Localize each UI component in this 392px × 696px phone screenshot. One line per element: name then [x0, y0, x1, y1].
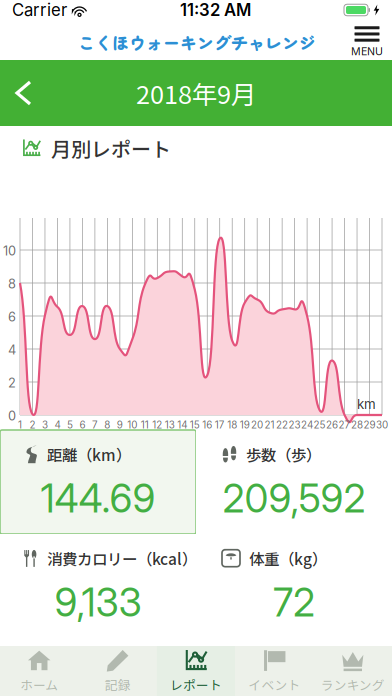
staticText: 26 [326, 419, 338, 431]
staticText: 4 [8, 342, 16, 357]
staticText: 27 [338, 419, 350, 431]
staticText: 6 [79, 419, 85, 431]
button[interactable]: 歩数（歩） [196, 430, 392, 534]
staticText: Carrier [12, 0, 67, 20]
staticText: 2 [29, 419, 35, 431]
button[interactable]: 記録 [78, 646, 157, 696]
button[interactable]: 距離（km） [0, 430, 196, 534]
staticText: 15 [190, 419, 200, 431]
staticText: 8 [8, 276, 16, 291]
staticText: 24 [301, 419, 313, 431]
staticText: 7 [92, 419, 98, 431]
button[interactable]: 消費カロリー（kcal） [0, 534, 196, 638]
staticText: ホーム [20, 675, 58, 694]
staticText: 18 [227, 419, 237, 431]
staticText: 28 [351, 419, 363, 431]
staticText: 144.69 [40, 475, 155, 522]
staticText: 23 [289, 419, 301, 431]
staticText: 消費カロリー（kcal） [47, 547, 197, 569]
staticText: イベント [248, 675, 300, 694]
staticText: 月別レポート [51, 133, 171, 162]
staticText: 19 [240, 419, 250, 431]
staticText: 記録 [105, 675, 131, 694]
staticText: こくほウォーキングチャレンジ [78, 30, 316, 54]
staticText: 2 [8, 375, 16, 390]
staticText: 13 [165, 419, 175, 431]
staticText: 22 [276, 419, 288, 431]
staticText: 14 [177, 419, 187, 431]
staticText: 21 [265, 419, 275, 431]
staticText: 4 [54, 419, 60, 431]
staticText: 209,592 [222, 475, 365, 522]
staticText: 29 [363, 419, 375, 431]
staticText: 体重（kg） [249, 547, 327, 569]
staticText: 1 [18, 419, 22, 431]
staticText: km [357, 396, 376, 412]
staticText: 10 [3, 243, 16, 258]
staticText: 25 [313, 419, 325, 431]
staticText: レポート [170, 675, 222, 694]
staticText: 12 [152, 419, 162, 431]
staticText: 0 [8, 408, 16, 423]
staticText: 17 [215, 419, 225, 431]
button[interactable]: レポート [157, 646, 235, 696]
button[interactable]: イベント [235, 646, 314, 696]
staticText: 9 [117, 419, 123, 431]
staticText: 6 [8, 309, 16, 324]
staticText: ランキング [321, 675, 385, 694]
staticText: 距離（km） [47, 443, 131, 465]
staticText: 2018年9月 [136, 75, 256, 111]
staticText: 歩数（歩） [246, 443, 321, 465]
staticText: 9,133 [54, 579, 141, 626]
button[interactable]: 体重（kg） [196, 534, 392, 638]
staticText: 3 [42, 419, 48, 431]
staticText: 11 [141, 419, 149, 431]
button[interactable]: Menu [347, 24, 387, 60]
button[interactable]: ホーム [0, 646, 78, 696]
staticText: 5 [67, 419, 73, 431]
staticText: 16 [202, 419, 212, 431]
staticText: 11:32 AM [180, 0, 251, 20]
staticText: 72 [273, 579, 315, 626]
staticText: 20 [251, 419, 263, 431]
button[interactable]: ランキング [314, 646, 392, 696]
button[interactable]: Previous month [0, 70, 47, 116]
staticText: 8 [104, 419, 110, 431]
staticText: MENU [351, 45, 383, 58]
staticText: 30 [376, 419, 388, 431]
staticText: 10 [127, 419, 137, 431]
